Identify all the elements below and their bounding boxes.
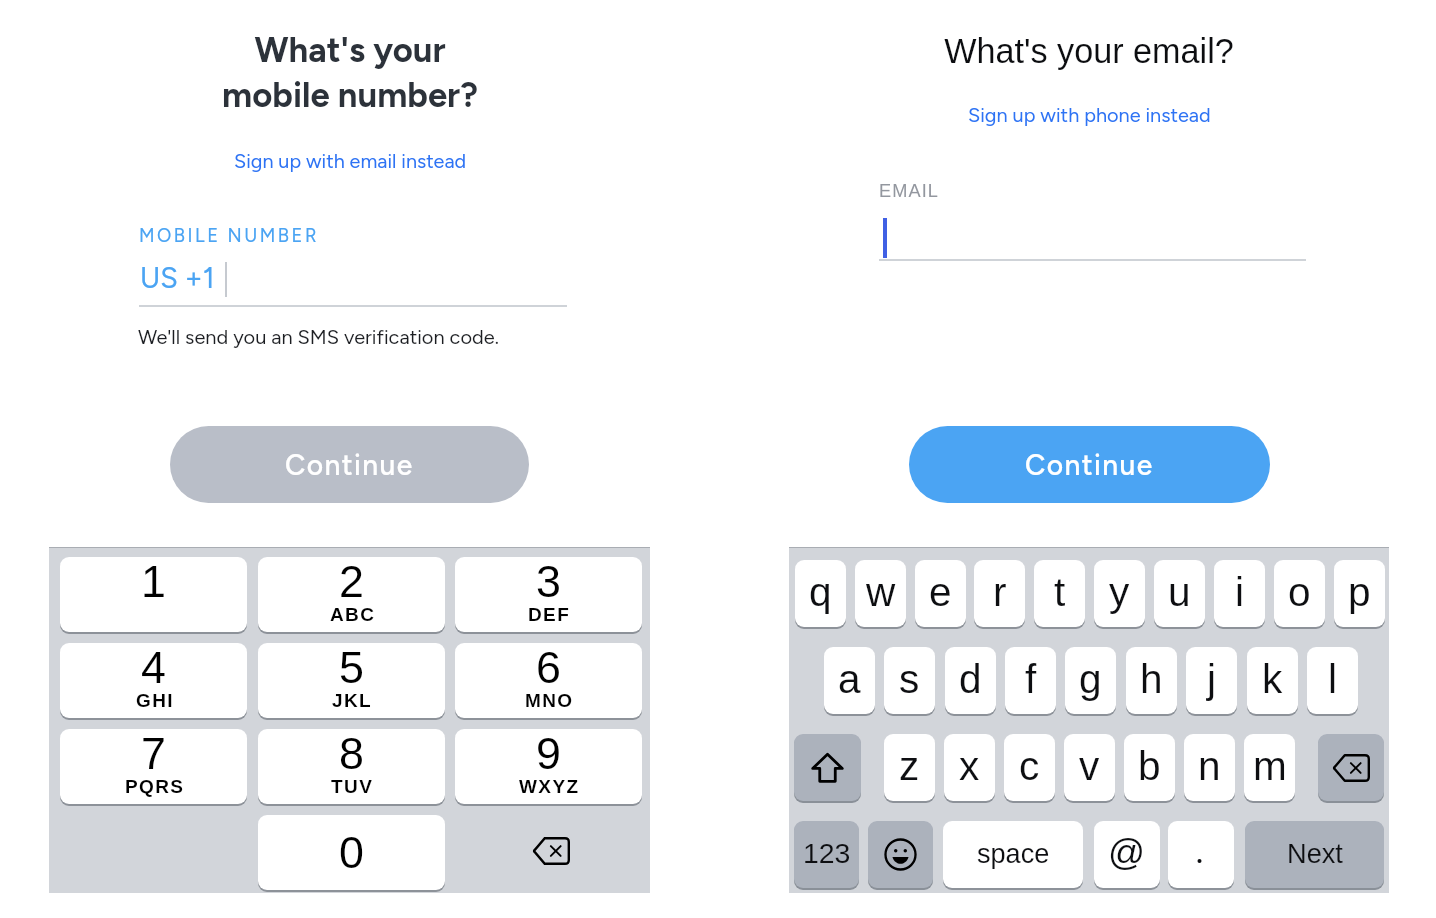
staticText: t xyxy=(1054,569,1066,614)
button[interactable]: s xyxy=(884,647,935,714)
staticText: MOBILE NUMBER xyxy=(139,225,320,247)
staticText: 3 xyxy=(536,557,561,606)
button[interactable]: k xyxy=(1247,647,1298,714)
button[interactable]: Sign up with phone instead xyxy=(929,103,1249,127)
button[interactable]: p xyxy=(1334,560,1385,627)
staticText: What's your email? xyxy=(769,32,1409,70)
button[interactable]: d xyxy=(945,647,996,714)
staticText: p xyxy=(1348,569,1371,614)
button[interactable]: i xyxy=(1214,560,1265,627)
staticText: w xyxy=(866,569,896,614)
button[interactable]: 5 xyxy=(258,643,445,718)
staticText: e xyxy=(929,569,952,614)
staticText: 1 xyxy=(141,557,166,606)
button[interactable]: space xyxy=(943,821,1083,888)
staticText: b xyxy=(1138,743,1161,788)
button[interactable]: 4 xyxy=(60,643,247,718)
button[interactable]: b xyxy=(1124,734,1175,801)
staticText: r xyxy=(993,569,1007,614)
button[interactable]: l xyxy=(1307,647,1358,714)
staticText: n xyxy=(1198,743,1221,788)
button[interactable]: j xyxy=(1186,647,1237,714)
staticText: WXYZ xyxy=(519,776,580,797)
button[interactable]: x xyxy=(944,734,995,801)
staticText: 2 xyxy=(339,557,364,606)
button[interactable] xyxy=(1168,821,1234,888)
button[interactable]: 6 xyxy=(455,643,642,718)
button[interactable]: u xyxy=(1154,560,1205,627)
staticText: We'll send you an SMS verification code. xyxy=(138,325,499,349)
button[interactable]: Continue xyxy=(170,426,529,503)
button[interactable]: 2 xyxy=(258,557,445,632)
button[interactable]: 0 xyxy=(258,815,445,890)
staticText: 6 xyxy=(536,643,561,692)
staticText: Sign up with phone instead xyxy=(968,103,1211,127)
staticText: 8 xyxy=(339,729,364,778)
staticText: a xyxy=(838,656,861,701)
staticText: i xyxy=(1235,569,1244,614)
staticText: s xyxy=(899,656,920,701)
staticText: space xyxy=(977,838,1050,868)
staticText: 9 xyxy=(536,729,561,778)
staticText: o xyxy=(1288,569,1311,614)
staticText: f xyxy=(1025,656,1037,701)
staticText: j xyxy=(1207,656,1216,701)
button[interactable]: e xyxy=(915,560,966,627)
staticText: m xyxy=(1253,743,1287,788)
button[interactable]: w xyxy=(855,560,906,627)
button[interactable]: Shift xyxy=(794,734,861,801)
button[interactable]: g xyxy=(1065,647,1116,714)
staticText: What's your mobile number? xyxy=(30,29,670,115)
staticText: US +1 xyxy=(140,261,215,295)
staticText: Sign up with email instead xyxy=(234,149,467,173)
button[interactable]: f xyxy=(1005,647,1056,714)
staticText: d xyxy=(959,656,982,701)
button[interactable]: v xyxy=(1064,734,1115,801)
button[interactable]: a xyxy=(824,647,875,714)
button[interactable]: 9 xyxy=(455,729,642,804)
button[interactable]: y xyxy=(1094,560,1145,627)
staticText: PQRS xyxy=(125,776,185,797)
button[interactable]: m xyxy=(1244,734,1295,801)
staticText: v xyxy=(1079,743,1100,788)
button[interactable]: Next xyxy=(1245,821,1384,888)
staticText: GHI xyxy=(136,690,174,711)
button[interactable]: q xyxy=(795,560,846,627)
staticText: q xyxy=(809,569,832,614)
button[interactable]: 8 xyxy=(258,729,445,804)
button[interactable]: 3 xyxy=(455,557,642,632)
button[interactable]: o xyxy=(1274,560,1325,627)
staticText: y xyxy=(1109,569,1130,614)
button[interactable]: Emoji xyxy=(868,821,933,888)
staticText: l xyxy=(1328,656,1337,701)
button[interactable]: 123 xyxy=(794,821,859,888)
staticText: @ xyxy=(1108,832,1146,873)
staticText: c xyxy=(1019,743,1040,788)
button[interactable]: c xyxy=(1004,734,1055,801)
staticText: h xyxy=(1140,656,1163,701)
button[interactable]: n xyxy=(1184,734,1235,801)
staticText: EMAIL xyxy=(879,181,940,201)
staticText: 5 xyxy=(339,643,364,692)
button[interactable]: 7 xyxy=(60,729,247,804)
staticText: JKL xyxy=(332,690,373,711)
staticText: 123 xyxy=(803,837,851,869)
staticText: Continue xyxy=(1025,448,1154,482)
button[interactable]: h xyxy=(1126,647,1177,714)
staticText: MNO xyxy=(525,690,574,711)
staticText: x xyxy=(959,743,980,788)
staticText: DEF xyxy=(528,604,571,625)
button[interactable]: Sign up with email instead xyxy=(190,149,510,173)
button[interactable]: Continue xyxy=(909,426,1270,503)
button[interactable]: 1 xyxy=(60,557,247,632)
button[interactable]: t xyxy=(1034,560,1085,627)
staticText: k xyxy=(1262,656,1283,701)
button[interactable]: @ xyxy=(1094,821,1160,888)
button[interactable]: r xyxy=(974,560,1025,627)
button[interactable]: Backspace xyxy=(455,815,642,890)
staticText: TUV xyxy=(331,776,374,797)
button[interactable]: Backspace xyxy=(1318,734,1384,801)
staticText: u xyxy=(1168,569,1191,614)
button[interactable]: z xyxy=(884,734,935,801)
staticText: z xyxy=(899,743,920,788)
